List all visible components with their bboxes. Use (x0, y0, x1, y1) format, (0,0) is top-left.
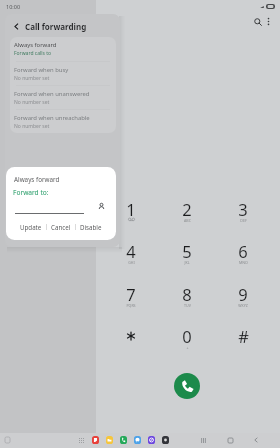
button[interactable]: Accessibility (2, 435, 12, 445)
button[interactable]: Phone (116, 433, 130, 447)
button[interactable]: 3 (219, 193, 267, 233)
button[interactable]: Back (250, 434, 262, 446)
staticText: 10:00 (6, 3, 21, 10)
staticText: Update (20, 223, 42, 231)
staticText: Forward calls to (14, 50, 52, 57)
button[interactable]: Choose contact (95, 200, 107, 212)
button[interactable]: 0 (163, 320, 211, 360)
button[interactable]: More options (260, 13, 277, 30)
button[interactable]: Disable (76, 221, 106, 233)
staticText: 9 (238, 283, 248, 305)
staticText: # (238, 325, 249, 347)
staticText: 1 (126, 198, 136, 220)
staticText: 0 (182, 325, 192, 347)
staticText: Always forward (14, 41, 57, 49)
staticText: PQRS (126, 303, 136, 308)
button[interactable]: Always forward (10, 37, 116, 61)
button[interactable]: 6 (219, 235, 267, 275)
button[interactable]: Call (174, 373, 200, 399)
staticText: 3 (238, 198, 248, 220)
button[interactable] (107, 320, 155, 360)
button[interactable]: 8 (163, 278, 211, 318)
staticText: ABC (184, 218, 191, 223)
button[interactable]: Cancel (47, 221, 75, 233)
staticText: DEF (240, 218, 247, 223)
staticText: + (186, 345, 189, 350)
staticText: Disable (80, 223, 102, 231)
button[interactable]: Recents (197, 434, 209, 446)
button[interactable]: 4 (107, 235, 155, 275)
staticText: 6 (238, 240, 248, 262)
button[interactable]: Forward when unreachable (10, 109, 116, 133)
staticText: Call forwarding (25, 21, 87, 32)
staticText: Always forward (14, 175, 60, 184)
button[interactable]: Browser (144, 433, 158, 447)
staticText: WXYZ (238, 303, 248, 308)
button[interactable]: Files (102, 433, 116, 447)
button[interactable]: Forward when unanswered (10, 85, 116, 109)
button[interactable]: Camera (158, 433, 172, 447)
staticText: No number set (14, 75, 50, 82)
staticText: Forward to: (13, 188, 49, 197)
button[interactable]: All apps (75, 434, 87, 446)
staticText: TUV (184, 303, 191, 308)
button[interactable]: # (219, 320, 267, 360)
staticText: Forward when unanswered (14, 90, 90, 98)
button[interactable]: 7 (107, 278, 155, 318)
button[interactable]: Back (10, 20, 23, 33)
staticText: JKL (184, 260, 190, 265)
staticText: No number set (14, 123, 50, 130)
staticText: 2 (182, 198, 192, 220)
staticText: MNO (239, 260, 248, 265)
button[interactable]: Forward when busy (10, 61, 116, 85)
staticText: No number set (14, 99, 50, 106)
button[interactable]: Update (16, 221, 46, 233)
button[interactable]: Messages (130, 433, 144, 447)
button[interactable]: 1 (107, 193, 155, 233)
button[interactable]: 2 (163, 193, 211, 233)
staticText: 7 (126, 283, 136, 305)
button[interactable]: Search (249, 13, 266, 30)
button[interactable]: Home (224, 434, 236, 446)
staticText: Forward when busy (14, 66, 69, 74)
staticText: 4 (126, 240, 136, 262)
staticText: 5 (182, 240, 192, 262)
button[interactable]: 5 (163, 235, 211, 275)
staticText: GHI (128, 260, 135, 265)
staticText: 8 (182, 283, 192, 305)
button[interactable]: 9 (219, 278, 267, 318)
staticText: Forward when unreachable (14, 114, 90, 122)
button[interactable]: Recorder (88, 433, 102, 447)
staticText: Cancel (51, 223, 71, 231)
